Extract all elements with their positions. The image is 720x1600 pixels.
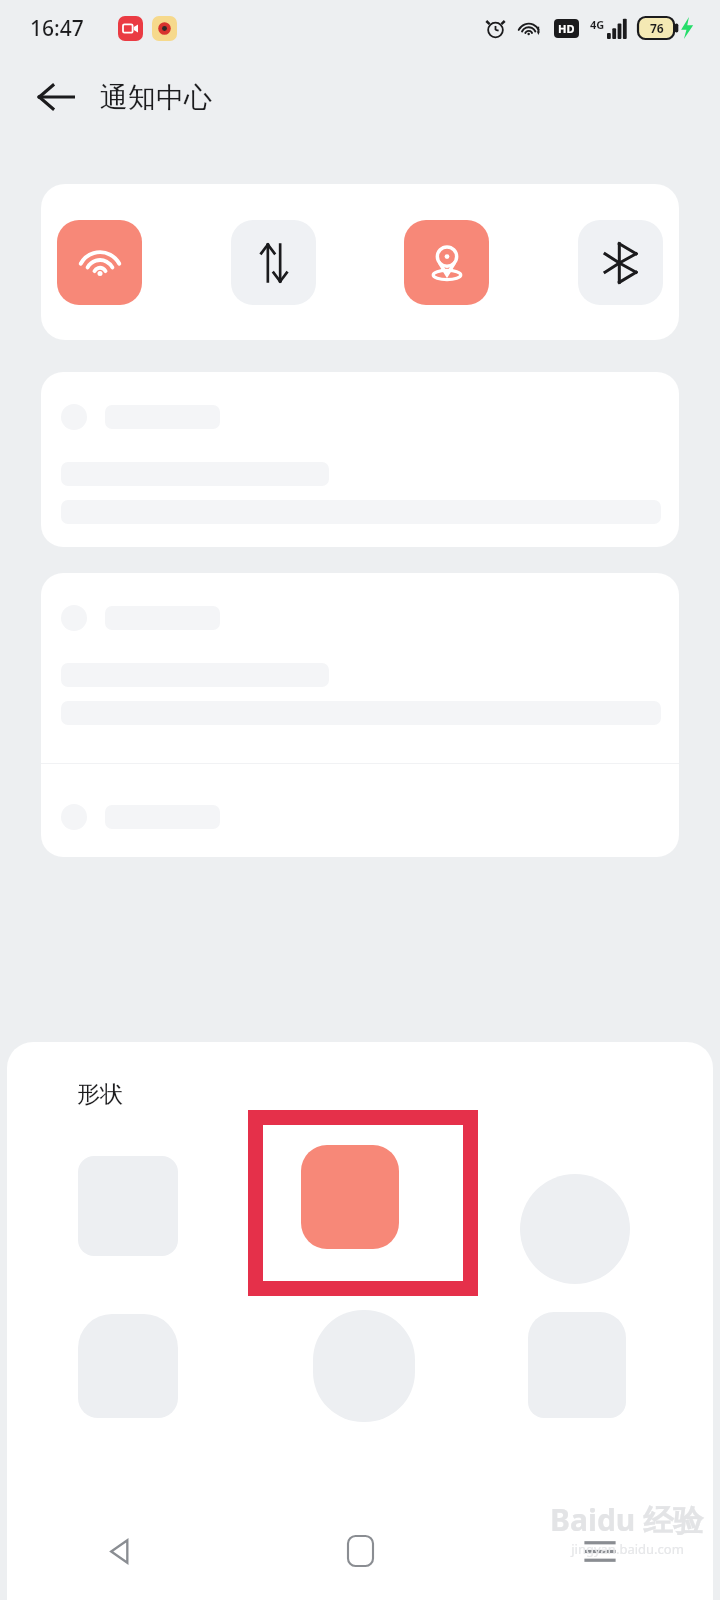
staticText: 76	[650, 20, 664, 36]
button[interactable]: Back	[26, 67, 86, 127]
button[interactable]: Shape option 5	[313, 1310, 415, 1422]
staticText: 16:47	[30, 14, 84, 43]
button[interactable]: Shape option 2	[301, 1145, 399, 1249]
button[interactable]	[41, 573, 679, 857]
button[interactable]: Home	[240, 1502, 480, 1600]
button[interactable]: Shape option 4	[78, 1314, 178, 1418]
staticText: Baidu 经验	[550, 1499, 704, 1540]
button[interactable]: Bluetooth	[578, 220, 663, 305]
staticText: 4G	[590, 17, 605, 32]
button[interactable]	[41, 372, 679, 547]
button[interactable]: Mobile data	[231, 220, 316, 305]
button[interactable]: Shape option 6	[528, 1312, 626, 1418]
button[interactable]: Shape option 3	[520, 1174, 630, 1284]
staticText: jingyan.baidu.com	[571, 1540, 684, 1558]
button[interactable]: Back	[0, 1502, 240, 1600]
button[interactable]: Wi-Fi	[57, 220, 142, 305]
staticText: 形状	[77, 1080, 123, 1109]
button[interactable]: Location	[404, 220, 489, 305]
staticText: HD	[558, 21, 575, 36]
button[interactable]: Recent apps	[480, 1502, 720, 1600]
staticText: 通知中心	[100, 80, 212, 115]
